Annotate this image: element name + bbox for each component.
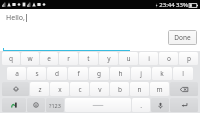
button[interactable]: e (40, 52, 58, 65)
button[interactable]: Enter (170, 98, 198, 112)
staticText: ?123 (49, 102, 61, 109)
button[interactable]: g (89, 67, 109, 80)
staticText: h (118, 69, 123, 78)
staticText: Hello, (6, 13, 25, 23)
button[interactable]: d (47, 67, 67, 80)
staticText: a (15, 69, 19, 78)
button[interactable]: Change language (2, 98, 26, 112)
button[interactable]: s (27, 67, 46, 80)
button[interactable]: y (99, 52, 118, 65)
staticText: u (126, 54, 131, 63)
button[interactable]: m (150, 82, 169, 96)
button[interactable]: Space (65, 98, 131, 112)
staticText: e (47, 54, 51, 63)
staticText: z (38, 85, 42, 94)
button[interactable]: h (110, 67, 130, 80)
button[interactable]: Backspace (170, 82, 198, 96)
button[interactable]: f (68, 67, 88, 80)
button[interactable]: p (179, 52, 198, 65)
staticText: l (182, 69, 184, 78)
staticText: 33% (176, 1, 188, 9)
staticText: i (148, 54, 150, 63)
staticText: x (58, 85, 62, 94)
button[interactable]: t (79, 52, 98, 65)
button[interactable]: Voice input (151, 98, 169, 112)
staticText: 23:44 (159, 1, 175, 9)
staticText: k (160, 69, 164, 78)
button[interactable]: ?123 (46, 98, 64, 112)
button[interactable]: z (30, 82, 49, 96)
staticText: s (35, 69, 39, 78)
staticText: m (156, 85, 163, 94)
button[interactable]: Shift (2, 82, 29, 96)
staticText: v (98, 85, 102, 94)
staticText: w (27, 54, 33, 63)
staticText: r (67, 54, 70, 63)
staticText: b (118, 85, 122, 94)
button[interactable]: n (130, 82, 149, 96)
button[interactable]: o (159, 52, 178, 65)
staticText: o (167, 54, 171, 63)
button[interactable]: x (50, 82, 69, 96)
staticText: c (78, 85, 82, 94)
button[interactable]: Emoji (27, 98, 45, 112)
staticText: . (140, 101, 142, 110)
button[interactable]: v (90, 82, 109, 96)
button[interactable]: u (119, 52, 138, 65)
button[interactable]: . (132, 98, 150, 112)
button[interactable]: a (7, 67, 26, 80)
button[interactable]: r (59, 52, 78, 65)
button[interactable]: k (152, 67, 172, 80)
staticText: j (140, 69, 142, 78)
button[interactable]: b (110, 82, 129, 96)
staticText: f (77, 69, 80, 78)
staticText: d (55, 69, 59, 78)
button[interactable]: w (21, 52, 39, 65)
button[interactable]: j (131, 67, 151, 80)
staticText: Done (174, 33, 191, 42)
staticText: n (137, 85, 142, 94)
button[interactable]: i (139, 52, 158, 65)
staticText: t (87, 54, 90, 63)
staticText: y (107, 54, 111, 63)
staticText: p (187, 54, 191, 63)
button[interactable]: q (2, 52, 20, 65)
button[interactable]: c (70, 82, 89, 96)
button[interactable]: l (173, 67, 193, 80)
staticText: g (97, 69, 101, 78)
button[interactable]: Done (168, 30, 197, 45)
staticText: q (9, 54, 13, 63)
